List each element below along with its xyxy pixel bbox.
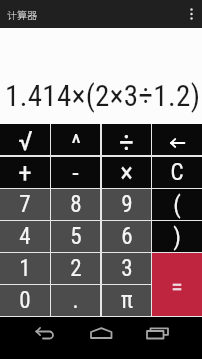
button[interactable]: 6 xyxy=(102,221,151,252)
staticText: C xyxy=(170,159,184,186)
staticText: 7 xyxy=(19,191,31,218)
staticText: ( xyxy=(173,191,181,219)
button[interactable]: 8 xyxy=(51,189,100,220)
button[interactable]: ) xyxy=(152,221,202,252)
button[interactable]: × xyxy=(102,157,151,188)
button[interactable]: 2 xyxy=(51,253,100,284)
button[interactable]: ( xyxy=(152,189,202,220)
button[interactable]: 4 xyxy=(0,221,50,252)
button[interactable]: 0 xyxy=(0,285,50,316)
staticText: . xyxy=(72,287,79,314)
button[interactable] xyxy=(152,124,202,155)
staticText: 8 xyxy=(70,191,82,218)
staticText: 4 xyxy=(19,223,31,250)
button[interactable] xyxy=(139,320,175,348)
button[interactable]: - xyxy=(51,157,100,188)
button[interactable]: C xyxy=(152,157,202,188)
staticText: ) xyxy=(173,223,181,251)
staticText: 0 xyxy=(19,287,31,314)
button[interactable]: π xyxy=(102,285,151,316)
staticText: × xyxy=(120,157,133,188)
staticText: ÷ xyxy=(119,125,134,156)
button[interactable]: 9 xyxy=(102,189,151,220)
staticText: + xyxy=(18,157,32,188)
staticText: 5 xyxy=(70,223,82,250)
button[interactable]: + xyxy=(0,157,50,188)
staticText: - xyxy=(72,158,79,188)
staticText: 6 xyxy=(121,223,133,250)
button[interactable] xyxy=(83,320,119,348)
button[interactable] xyxy=(152,253,202,316)
staticText: 3 xyxy=(121,255,133,282)
button[interactable]: ^ xyxy=(51,124,100,155)
button[interactable]: ÷ xyxy=(102,124,151,155)
staticText: π xyxy=(121,287,133,314)
button[interactable]: √ xyxy=(0,124,50,155)
staticText: 2 xyxy=(70,255,82,282)
staticText: ^ xyxy=(71,128,81,158)
staticText: 计算器 xyxy=(7,7,37,21)
staticText: 1 xyxy=(19,255,31,282)
staticText: √ xyxy=(18,125,33,156)
button[interactable] xyxy=(27,320,63,348)
button[interactable]: . xyxy=(51,285,100,316)
button[interactable] xyxy=(181,0,202,28)
button[interactable]: 1 xyxy=(0,253,50,284)
button[interactable]: 7 xyxy=(0,189,50,220)
staticText: 9 xyxy=(121,191,133,218)
staticText: 1.414×(2×3÷1.2) xyxy=(5,79,201,113)
button[interactable]: 5 xyxy=(51,221,100,252)
button[interactable]: 3 xyxy=(102,253,151,284)
